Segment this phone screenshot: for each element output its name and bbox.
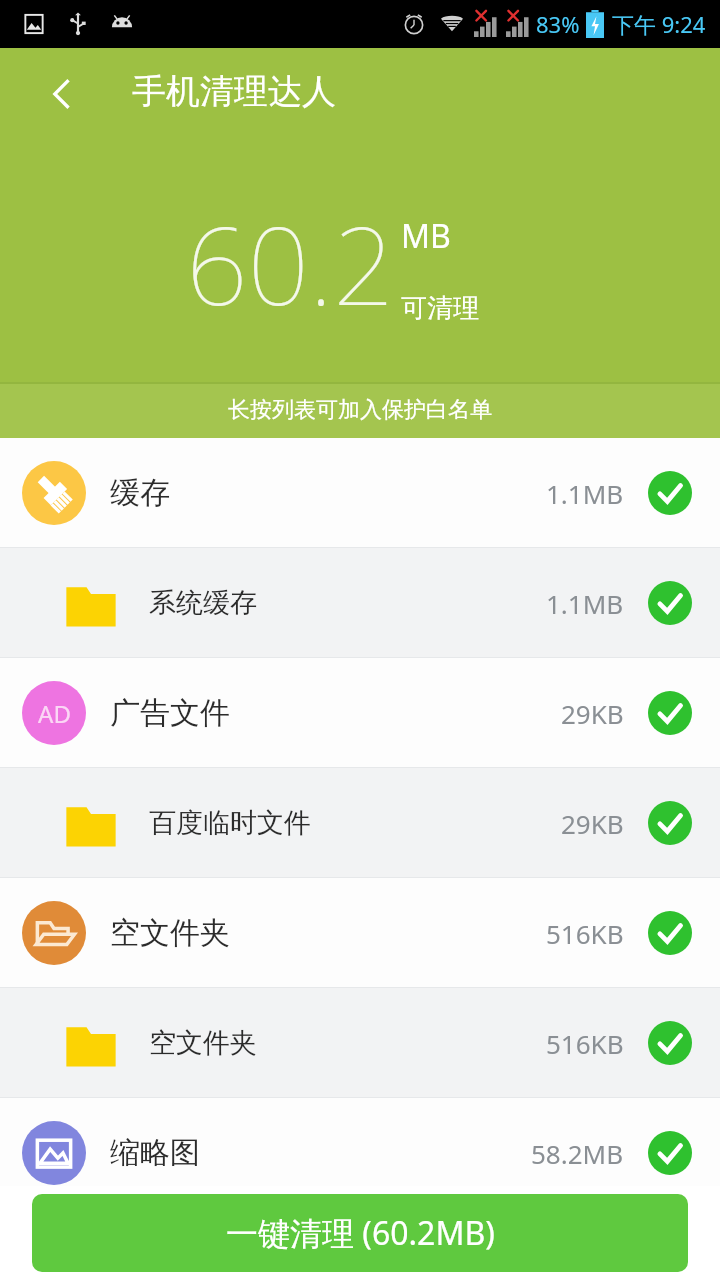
staticText: 手机清理达人: [132, 70, 336, 113]
staticText: 百度临时文件: [149, 806, 561, 840]
staticText: 缩略图: [110, 1134, 531, 1172]
staticText: MB: [401, 214, 451, 258]
staticText: 1.1MB: [546, 586, 624, 621]
button[interactable]: 缓存: [0, 438, 720, 548]
staticText: 58.2MB: [531, 1136, 624, 1171]
button[interactable]: Selected: [646, 1019, 694, 1067]
staticText: 缓存: [110, 474, 546, 512]
button[interactable]: 一键清理 (60.2MB): [32, 1194, 688, 1272]
button[interactable]: Selected: [646, 689, 694, 737]
staticText: 60.2: [186, 190, 395, 337]
staticText: 516KB: [546, 916, 624, 951]
button[interactable]: 百度临时文件: [0, 768, 720, 878]
button[interactable]: Back: [34, 66, 90, 122]
button[interactable]: AD: [0, 658, 720, 768]
staticText: AD: [38, 697, 71, 730]
button[interactable]: 缩略图: [0, 1098, 720, 1208]
button[interactable]: Selected: [646, 579, 694, 627]
staticText: 空文件夹: [110, 914, 546, 952]
staticText: 83%: [536, 9, 580, 39]
button[interactable]: 空文件夹: [0, 988, 720, 1098]
staticText: 下午 9:24: [612, 9, 706, 39]
button[interactable]: Selected: [646, 1129, 694, 1177]
staticText: 29KB: [561, 696, 624, 731]
button[interactable]: Selected: [646, 469, 694, 517]
staticText: 广告文件: [110, 694, 561, 732]
staticText: 系统缓存: [149, 586, 546, 620]
staticText: 一键清理 (60.2MB): [226, 1211, 495, 1255]
button[interactable]: Selected: [646, 909, 694, 957]
staticText: 1.1MB: [546, 476, 624, 511]
staticText: 可清理: [401, 292, 479, 325]
staticText: 516KB: [546, 1026, 624, 1061]
staticText: 29KB: [561, 806, 624, 841]
staticText: 长按列表可加入保护白名单: [228, 396, 492, 424]
button[interactable]: Selected: [646, 799, 694, 847]
button[interactable]: 系统缓存: [0, 548, 720, 658]
button[interactable]: 空文件夹: [0, 878, 720, 988]
staticText: 空文件夹: [149, 1026, 546, 1060]
